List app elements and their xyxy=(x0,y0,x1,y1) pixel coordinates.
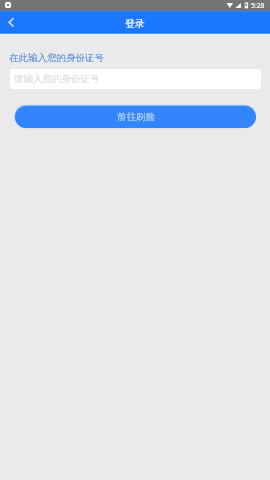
staticText: 在此输入您的身份证号 xyxy=(9,52,104,64)
button[interactable]: 前往刷脸 xyxy=(15,106,256,128)
staticText: 5:28 xyxy=(251,1,265,10)
staticText: 前往刷脸 xyxy=(117,111,155,123)
staticText: 请输入您的身份证号 xyxy=(14,73,100,85)
staticText: 登录 xyxy=(125,17,145,30)
button[interactable]: 请输入您的身份证号 xyxy=(10,69,261,89)
button[interactable]: Back xyxy=(0,11,22,33)
